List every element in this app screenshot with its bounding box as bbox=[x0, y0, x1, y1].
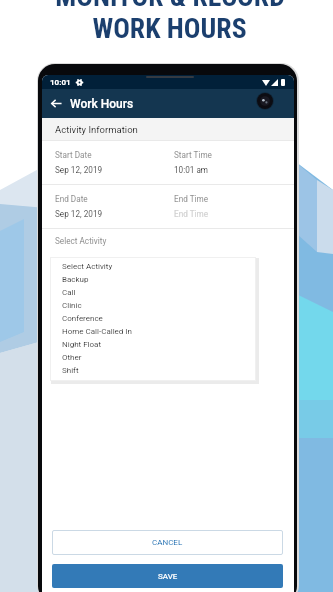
staticText: Other bbox=[62, 353, 82, 362]
staticText: Sep 12, 2019 bbox=[55, 209, 103, 219]
staticText: Call bbox=[62, 288, 76, 297]
staticText: MONITOR & RECORD bbox=[55, 0, 285, 12]
button[interactable]: Select Activity bbox=[50, 260, 256, 273]
staticText: WORK HOURS bbox=[92, 12, 247, 44]
staticText: Home Call-Called In bbox=[62, 327, 132, 336]
staticText: Sep 12, 2019 bbox=[55, 165, 103, 175]
staticText: Work Hours bbox=[70, 97, 134, 111]
staticText: 10:01 bbox=[50, 78, 71, 87]
staticText: SAVE bbox=[158, 572, 178, 581]
staticText: Select Activity bbox=[62, 262, 113, 271]
button[interactable]: Home Call-Called In bbox=[50, 325, 256, 338]
staticText: End Time bbox=[174, 209, 209, 219]
staticText: End Time bbox=[174, 194, 209, 204]
button[interactable]: Shift bbox=[50, 364, 256, 377]
button[interactable]: Other bbox=[50, 351, 256, 364]
staticText: Night Float bbox=[62, 340, 102, 349]
staticText: Activity Information bbox=[55, 124, 138, 135]
staticText: Shift bbox=[62, 366, 79, 375]
staticText: Select Activity bbox=[55, 236, 107, 246]
button[interactable]: CANCEL bbox=[52, 530, 283, 555]
staticText: End Date bbox=[55, 194, 88, 204]
staticText: Start Time bbox=[174, 150, 212, 160]
staticText: Clinic bbox=[62, 301, 82, 310]
staticText: Conference bbox=[62, 314, 103, 323]
button[interactable]: Back bbox=[51, 98, 62, 109]
staticText: Start Date bbox=[55, 150, 92, 160]
staticText: Backup bbox=[62, 275, 89, 284]
staticText: CANCEL bbox=[152, 538, 183, 547]
button[interactable]: Night Float bbox=[50, 338, 256, 351]
button[interactable]: Clinic bbox=[50, 299, 256, 312]
button[interactable]: Conference bbox=[50, 312, 256, 325]
button[interactable]: SAVE bbox=[52, 564, 283, 588]
button[interactable]: Call bbox=[50, 286, 256, 299]
staticText: 10:01 am bbox=[174, 165, 209, 175]
button[interactable]: Backup bbox=[50, 273, 256, 286]
